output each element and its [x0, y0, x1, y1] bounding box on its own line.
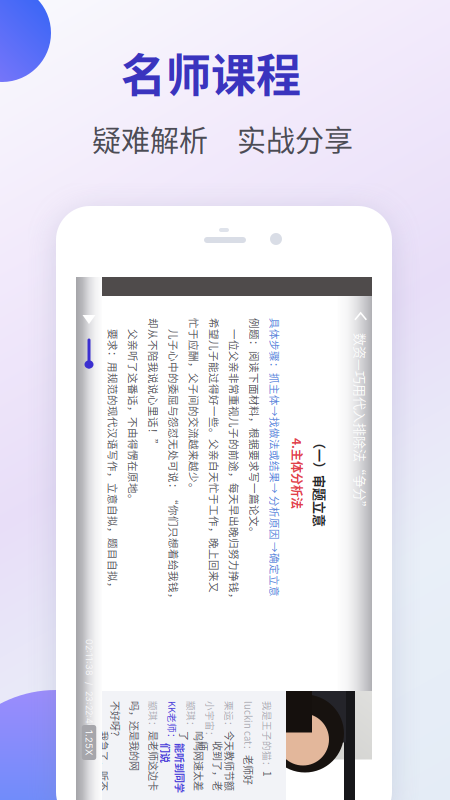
staticText: 观点鲜明，分析具体，条理清晰，语言流畅，不少于800字。 [3, 662, 296, 677]
staticText: 02:11:38 / 23:22:40 [324, 668, 415, 679]
staticText: 4.主体分析法 [123, 457, 194, 474]
staticText: （一）审题立意 [121, 433, 212, 452]
staticText: 希望儿子能过得好一些。父亲白天忙于工作，晚上回来又 [3, 541, 278, 556]
staticText: 颛琪： [386, 602, 416, 616]
staticText: 数资—巧用代入排除法“争分” [18, 392, 199, 411]
staticText: 忙于应酬，父子间的交流越来越少。 [3, 561, 179, 576]
staticText: 父亲听了这番话，不由得愣在原地。 [3, 621, 190, 637]
staticText: luckin cat： [386, 507, 440, 521]
staticText: 我是王子的猫： [386, 488, 450, 502]
staticText: KK老师： [386, 583, 428, 597]
staticText: 颛琪： [386, 659, 416, 673]
staticText: 疑难解析 实战分享 [92, 118, 353, 160]
staticText: 名师课程 [121, 40, 301, 105]
staticText: 儿子心中的委屈与怨怼无处可说：“你们只想着给我钱， [3, 581, 289, 596]
staticText: 具体步骤：抓主体→找做法或结果→ 分析原因 →确定立意 [3, 480, 282, 495]
staticText: 不好呀？ [386, 640, 426, 654]
staticText: 吗，还是我的网 [386, 621, 450, 635]
staticText: 颛琪： [386, 564, 416, 578]
staticText: 例题：阅读下面材料，根据要求写一篇论文。 [3, 500, 223, 515]
staticText: 小宇宙： [386, 545, 426, 559]
staticText: 栗运： [386, 526, 416, 540]
staticText: 却从不陪我说说心里话！” [3, 601, 135, 616]
staticText: 要求：用规范的现代汉语写作，立意自拟，题目自拟， [3, 642, 278, 657]
staticText: 一位父亲非常重视儿子的前途，每天早出晚归努力挣钱， [3, 520, 289, 536]
